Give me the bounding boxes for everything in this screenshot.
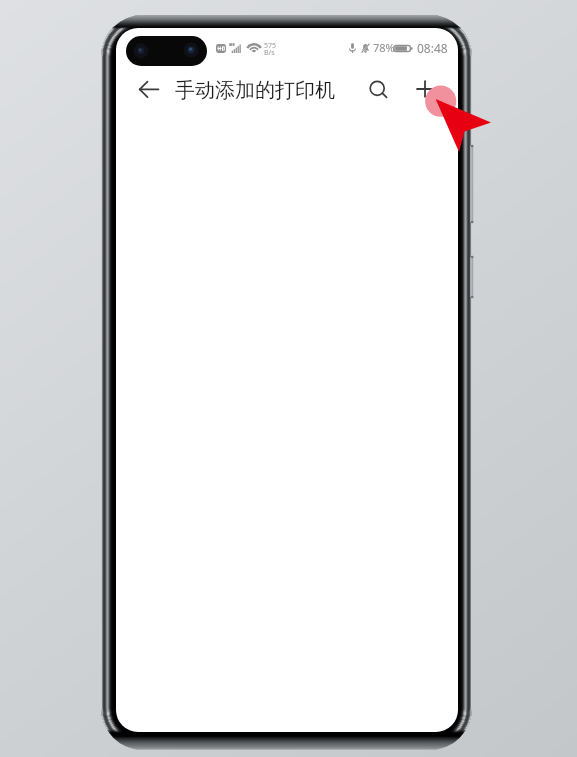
staticText: 575 <box>264 41 277 51</box>
button[interactable]: Search <box>370 81 390 101</box>
staticText: 手动添加的打印机 <box>175 78 335 103</box>
staticText: B/s <box>264 48 275 58</box>
button[interactable]: Back <box>138 74 170 106</box>
staticText: 08:48 <box>417 40 448 56</box>
button[interactable]: Add printer <box>415 79 435 99</box>
staticText: 78% <box>373 40 395 55</box>
